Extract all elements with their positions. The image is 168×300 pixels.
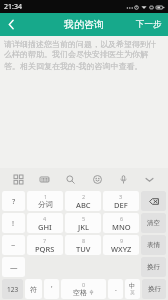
staticText: ! bbox=[12, 218, 15, 228]
button[interactable]: 2 bbox=[65, 191, 101, 211]
staticText: 表情 bbox=[147, 241, 160, 249]
button[interactable]: Emoji bbox=[88, 168, 107, 190]
staticText: — bbox=[10, 262, 18, 272]
staticText: 我的咨询 bbox=[64, 18, 104, 31]
button[interactable]: 0 bbox=[61, 279, 106, 299]
button[interactable]: 表情 bbox=[141, 235, 166, 255]
staticText: 清空 bbox=[147, 219, 160, 227]
staticText: . bbox=[115, 284, 117, 294]
button[interactable]: 1 bbox=[27, 191, 63, 211]
button[interactable]: 8 bbox=[65, 235, 101, 255]
button[interactable]: Back bbox=[0, 13, 22, 36]
staticText: 中 bbox=[129, 282, 136, 290]
button[interactable]: . bbox=[108, 279, 123, 299]
staticText: JKL bbox=[78, 222, 89, 232]
staticText: 下一步 bbox=[136, 19, 162, 30]
staticText: GHI bbox=[38, 222, 52, 232]
staticText: 21:34 bbox=[4, 2, 22, 12]
staticText: 换行 bbox=[148, 285, 161, 293]
button[interactable]: 123 bbox=[2, 279, 23, 299]
button[interactable]: 换行 bbox=[142, 279, 166, 299]
staticText: ' bbox=[51, 284, 53, 294]
staticText: 4 bbox=[43, 215, 47, 222]
button[interactable]: Backspace bbox=[141, 191, 166, 211]
staticText: WXYZ bbox=[111, 244, 132, 254]
staticText: ? bbox=[12, 196, 16, 206]
button[interactable]: Voice input bbox=[114, 168, 133, 190]
staticText: 123 bbox=[7, 285, 19, 294]
button[interactable]: Keyboard layout bbox=[35, 168, 54, 190]
staticText: 分词 bbox=[38, 200, 53, 209]
button[interactable]: 7 bbox=[27, 235, 63, 255]
staticText: 请详细描述您当前的问题，以及希望得到什么样的帮助。我们会尽快安排医生为你解答。相… bbox=[4, 39, 162, 71]
staticText: 9 bbox=[120, 237, 124, 244]
button[interactable]: 6 bbox=[103, 213, 139, 233]
button[interactable]: 中 bbox=[125, 279, 140, 299]
staticText: TUV bbox=[76, 244, 91, 254]
staticText: ~ bbox=[11, 240, 16, 250]
button[interactable]: 请详细描述您当前的问题，以及希望得到什么样的帮助。我们会尽快安排医生为你解答。相… bbox=[0, 36, 168, 168]
button[interactable]: 换行 bbox=[141, 257, 166, 277]
staticText: 换行 bbox=[147, 263, 160, 271]
staticText: 8 bbox=[82, 237, 86, 244]
staticText: 1 bbox=[44, 193, 48, 200]
staticText: 5 bbox=[82, 215, 86, 222]
button[interactable]: 9 bbox=[103, 235, 139, 255]
button[interactable]: 符 bbox=[25, 279, 42, 299]
button[interactable]: ! bbox=[2, 213, 25, 233]
button[interactable]: ~ bbox=[2, 235, 25, 255]
staticText: 3 bbox=[119, 193, 123, 200]
staticText: 0 bbox=[82, 281, 86, 288]
button[interactable]: ' bbox=[44, 279, 59, 299]
staticText: 6 bbox=[120, 215, 124, 222]
button[interactable]: Hide keyboard bbox=[140, 168, 159, 190]
staticText: 2 bbox=[82, 193, 86, 200]
staticText: 空格 bbox=[73, 288, 87, 297]
button[interactable]: ? bbox=[2, 191, 25, 211]
staticText: ABC bbox=[76, 200, 91, 210]
staticText: PQRS bbox=[35, 244, 55, 254]
button[interactable]: 下一步 bbox=[130, 13, 168, 36]
button[interactable]: Search bbox=[61, 168, 80, 190]
button[interactable]: 5 bbox=[65, 213, 101, 233]
button[interactable]: 3 bbox=[103, 191, 139, 211]
staticText: 符 bbox=[30, 285, 37, 294]
staticText: MNO bbox=[112, 222, 131, 232]
button[interactable]: 清空 bbox=[141, 213, 166, 233]
staticText: 7 bbox=[43, 237, 47, 244]
button[interactable]: — bbox=[2, 257, 25, 277]
button[interactable]: 4 bbox=[27, 213, 63, 233]
button[interactable]: Apps bbox=[9, 168, 28, 190]
staticText: DEF bbox=[114, 200, 128, 210]
staticText: 英 bbox=[130, 290, 135, 296]
